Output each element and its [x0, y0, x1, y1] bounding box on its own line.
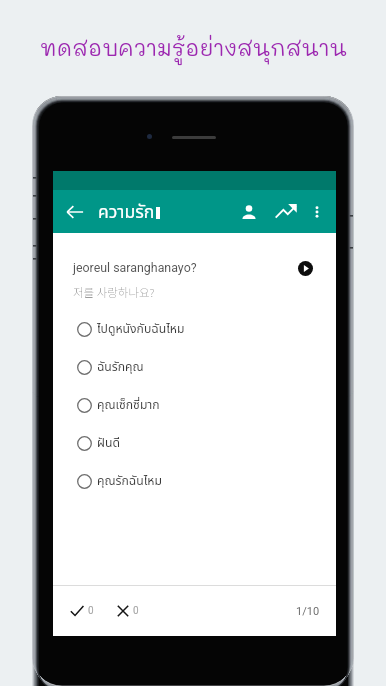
button[interactable]: More options — [305, 200, 329, 224]
button[interactable]: 0 — [117, 605, 139, 617]
button[interactable]: Statistics — [271, 197, 301, 227]
button[interactable]: 0 — [70, 604, 94, 618]
staticText: คุณเซ็กซี่มาก — [97, 396, 160, 414]
staticText: คุณรักฉันไหม — [97, 472, 162, 490]
staticText: 저를 사랑하나요? — [73, 284, 155, 301]
button[interactable]: ฝันดี — [53, 424, 336, 462]
button[interactable]: Profile — [234, 197, 264, 227]
staticText: ไปดูหนังกับฉันไหม — [97, 320, 185, 338]
staticText: ทดสอบความรู้อย่างสนุกสนาน — [40, 33, 347, 61]
staticText: 1/10 — [296, 605, 320, 618]
staticText: ฝันดี — [97, 434, 120, 452]
button[interactable]: Back — [60, 197, 90, 227]
staticText: ความรัก — [98, 199, 155, 225]
button[interactable]: ฉันรักคุณ — [53, 348, 336, 386]
staticText: 0 — [133, 605, 139, 617]
button[interactable]: คุณเซ็กซี่มาก — [53, 386, 336, 424]
button[interactable]: Play audio — [293, 256, 317, 280]
button[interactable]: ไปดูหนังกับฉันไหม — [53, 310, 336, 348]
staticText: jeoreul saranghanayo? — [73, 260, 197, 275]
staticText: 0 — [88, 605, 94, 617]
staticText: ฉันรักคุณ — [97, 358, 144, 376]
button[interactable]: คุณรักฉันไหม — [53, 462, 336, 500]
